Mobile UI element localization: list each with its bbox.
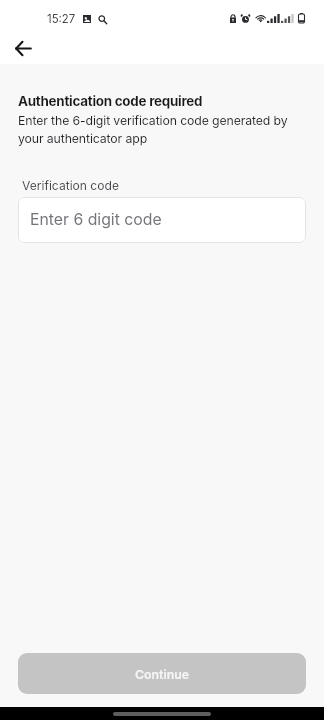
staticText: Verification code <box>22 178 119 193</box>
staticText: Enter 6 digit code <box>30 210 162 229</box>
staticText: Authentication code required <box>18 93 203 109</box>
button[interactable]: Continue <box>18 653 306 694</box>
staticText: Continue <box>135 667 189 682</box>
staticText: 15:27 <box>47 12 76 26</box>
staticText: Enter the 6-digit verification code gene… <box>18 113 306 146</box>
button[interactable]: Enter 6 digit code <box>18 197 306 243</box>
button[interactable]: Back <box>6 31 40 65</box>
